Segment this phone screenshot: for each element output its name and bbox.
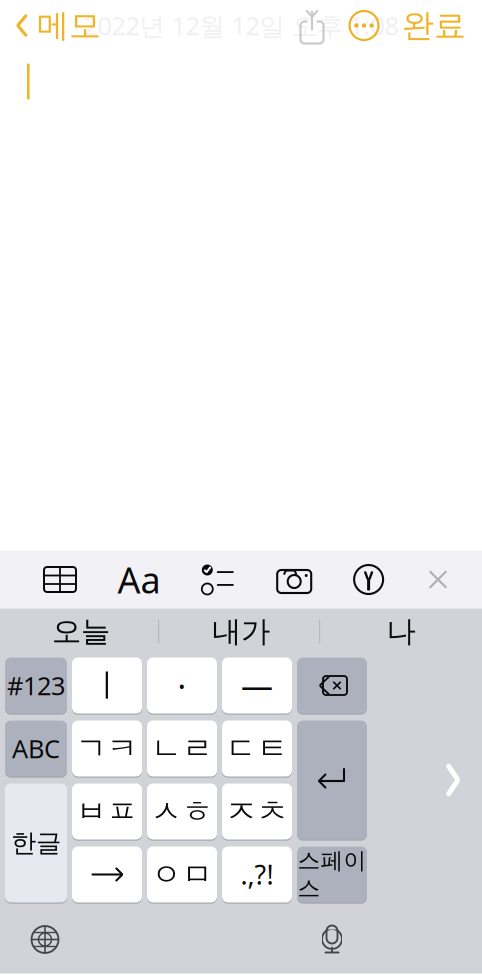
- button[interactable]: ㄷㅌ: [222, 720, 292, 776]
- staticText: ㅂㅍ: [76, 793, 138, 830]
- button[interactable]: 닫기: [424, 565, 452, 593]
- button[interactable]: Aa: [117, 556, 160, 603]
- staticText: ㄴㄹ: [151, 730, 213, 767]
- staticText: ㅈㅊ: [226, 793, 288, 830]
- button[interactable]: 완료: [402, 0, 482, 51]
- staticText: ㅇㅁ: [151, 856, 213, 893]
- staticText: 완료: [402, 6, 466, 45]
- staticText: 내가: [212, 613, 270, 649]
- button[interactable]: ㅣ: [72, 657, 142, 713]
- button[interactable]: 받아쓰기: [318, 922, 346, 956]
- staticText: ·: [177, 664, 186, 707]
- button[interactable]: ㄴㄹ: [147, 720, 217, 776]
- staticText: .,?!: [240, 857, 273, 892]
- button[interactable]: 한글: [5, 783, 67, 902]
- staticText: 나: [386, 613, 415, 649]
- button[interactable]: —: [222, 657, 292, 713]
- button[interactable]: 스페이스: [297, 846, 367, 902]
- staticText: Aa: [117, 556, 160, 603]
- button[interactable]: ㅈㅊ: [222, 783, 292, 839]
- button[interactable]: 메모로 돌아가기: [0, 0, 101, 51]
- button[interactable]: 다음 키보드: [30, 924, 60, 954]
- button[interactable]: ㅅㅎ: [147, 783, 217, 839]
- staticText: ㅣ: [91, 666, 123, 705]
- staticText: ㅅㅎ: [151, 793, 213, 830]
- button[interactable]: 추가 옵션: [348, 9, 380, 41]
- button[interactable]: ·: [147, 657, 217, 713]
- button[interactable]: 공유: [298, 8, 326, 42]
- button[interactable]: #123: [5, 657, 67, 713]
- button[interactable]: .,?!: [222, 846, 292, 902]
- button[interactable]: 오늘: [1, 608, 161, 654]
- staticText: ㄷㅌ: [226, 730, 288, 767]
- button[interactable]: 나: [321, 608, 481, 654]
- staticText: ㄱㅋ: [76, 730, 138, 767]
- staticText: ABC: [12, 732, 60, 765]
- button[interactable]: 체크리스트: [200, 564, 236, 594]
- button[interactable]: 표: [42, 565, 78, 593]
- button[interactable]: 내가: [161, 608, 321, 654]
- button[interactable]: ABC: [5, 720, 67, 776]
- button[interactable]: [72, 846, 142, 902]
- button[interactable]: ㅇㅁ: [147, 846, 217, 902]
- button[interactable]: 마크업: [353, 563, 385, 595]
- staticText: 메모: [37, 6, 101, 45]
- staticText: —: [241, 664, 273, 707]
- staticText: 오늘: [52, 613, 110, 649]
- staticText: 한글: [11, 827, 61, 858]
- button[interactable]: [297, 657, 367, 713]
- staticText: #123: [7, 669, 65, 702]
- staticText: 2022년 12월 12일 오후 1:08: [83, 9, 398, 42]
- button[interactable]: [297, 720, 367, 839]
- button[interactable]: ㅂㅍ: [72, 783, 142, 839]
- button[interactable]: 카메라: [275, 564, 313, 594]
- button[interactable]: ㄱㅋ: [72, 720, 142, 776]
- staticText: 스페이스: [297, 847, 366, 902]
